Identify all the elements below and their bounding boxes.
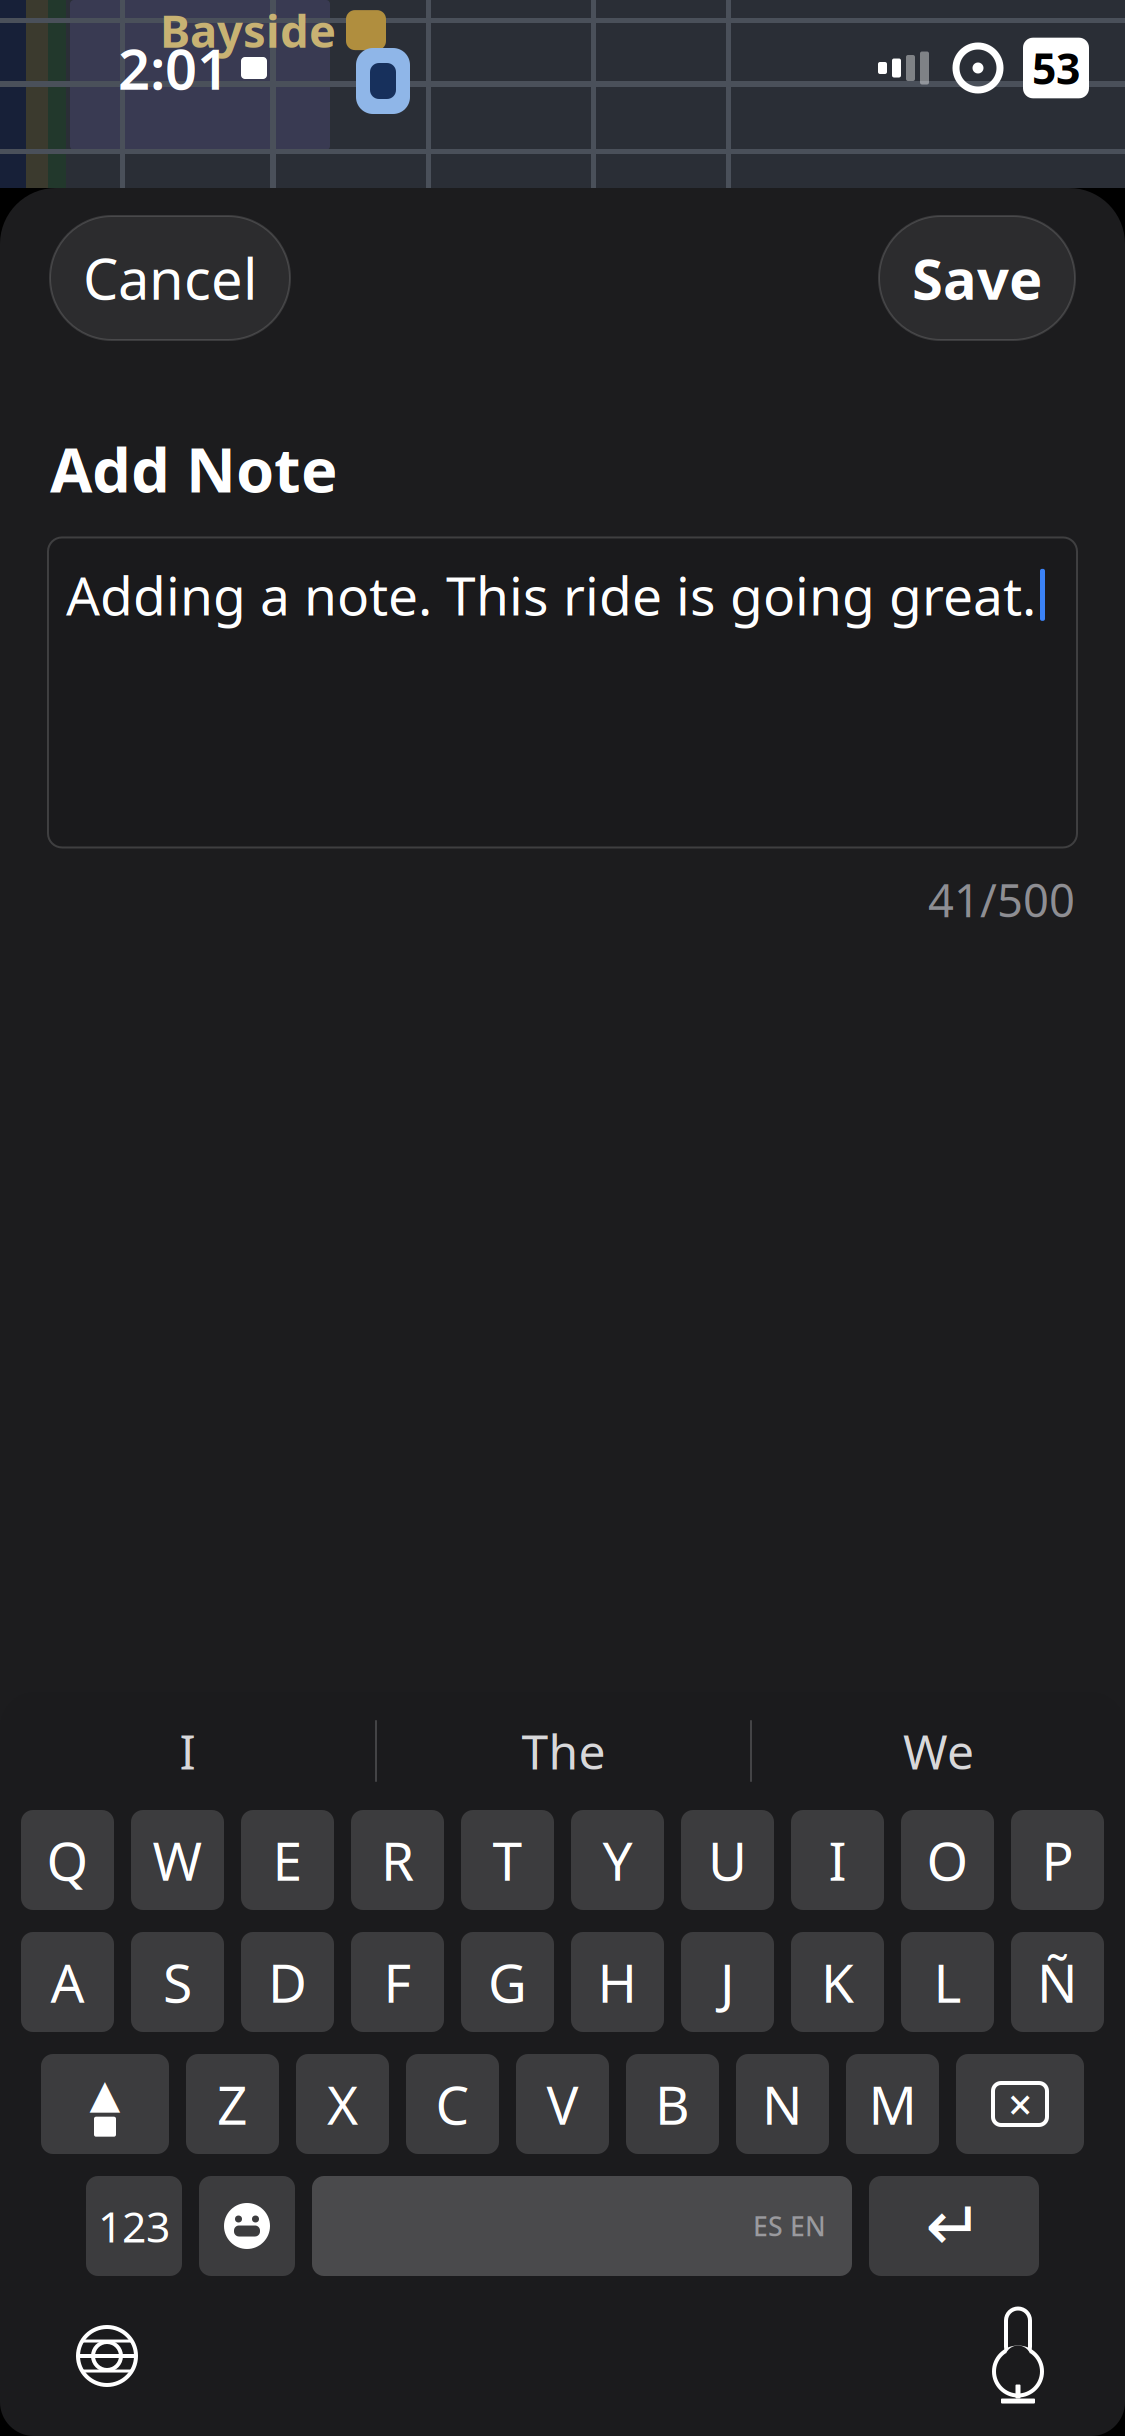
staticText: H bbox=[597, 1947, 637, 2017]
button[interactable]: U bbox=[681, 1810, 774, 1910]
button[interactable]: Ñ bbox=[1011, 1932, 1104, 2032]
staticText: J bbox=[720, 1947, 735, 2017]
staticText: G bbox=[488, 1947, 527, 2017]
button[interactable]: The bbox=[377, 1696, 750, 1806]
staticText: S bbox=[163, 1947, 192, 2017]
staticText: C bbox=[435, 2069, 469, 2139]
button[interactable]: H bbox=[571, 1932, 664, 2032]
button[interactable]: L bbox=[901, 1932, 994, 2032]
staticText: ↵ bbox=[925, 2187, 983, 2265]
button[interactable]: W bbox=[131, 1810, 224, 1910]
staticText: Adding a note. This ride is going great. bbox=[66, 559, 1036, 630]
button[interactable]: P bbox=[1011, 1810, 1104, 1910]
staticText: 2:01 bbox=[118, 31, 229, 105]
staticText: T bbox=[492, 1825, 522, 1895]
staticText: Cancel bbox=[83, 241, 257, 315]
button[interactable]: Emoji bbox=[199, 2176, 295, 2276]
staticText: D bbox=[268, 1947, 307, 2017]
staticText: × bbox=[1008, 2076, 1032, 2132]
staticText: Q bbox=[46, 1825, 88, 1895]
button[interactable]: B bbox=[626, 2054, 719, 2154]
staticText: The bbox=[521, 1719, 605, 1783]
button[interactable]: N bbox=[736, 2054, 829, 2154]
button[interactable]: D bbox=[241, 1932, 334, 2032]
staticText: Bayside bbox=[160, 0, 336, 60]
staticText: 123 bbox=[98, 2198, 170, 2254]
staticText: I bbox=[828, 1825, 846, 1895]
button[interactable]: Save bbox=[879, 216, 1075, 340]
button[interactable]: We bbox=[752, 1696, 1125, 1806]
staticText: M bbox=[868, 2069, 916, 2139]
button[interactable]: Space bbox=[312, 2176, 852, 2276]
staticText: A bbox=[50, 1947, 84, 2017]
button[interactable]: J bbox=[681, 1932, 774, 2032]
button[interactable]: C bbox=[406, 2054, 499, 2154]
button[interactable]: I bbox=[791, 1810, 884, 1910]
button[interactable]: Y bbox=[571, 1810, 664, 1910]
staticText: P bbox=[1041, 1825, 1073, 1895]
staticText: 41/500 bbox=[928, 869, 1075, 930]
button[interactable]: Shift bbox=[41, 2054, 169, 2154]
button[interactable]: S bbox=[131, 1932, 224, 2032]
button[interactable]: K bbox=[791, 1932, 884, 2032]
button[interactable]: Dictate bbox=[973, 2306, 1063, 2406]
button[interactable]: Delete bbox=[956, 2054, 1084, 2154]
button[interactable]: T bbox=[461, 1810, 554, 1910]
staticText: Z bbox=[217, 2069, 248, 2139]
staticText: E bbox=[272, 1825, 302, 1895]
button[interactable]: Q bbox=[21, 1810, 114, 1910]
button[interactable]: I bbox=[0, 1696, 375, 1806]
button[interactable]: O bbox=[901, 1810, 994, 1910]
button[interactable]: Cancel bbox=[50, 216, 290, 340]
staticText: ▲ bbox=[89, 2071, 120, 2117]
staticText: B bbox=[655, 2069, 690, 2139]
button[interactable]: F bbox=[351, 1932, 444, 2032]
button[interactable]: A bbox=[21, 1932, 114, 2032]
button[interactable]: M bbox=[846, 2054, 939, 2154]
button[interactable]: Return bbox=[869, 2176, 1039, 2276]
staticText: X bbox=[327, 2069, 358, 2139]
button[interactable]: X bbox=[296, 2054, 389, 2154]
staticText: W bbox=[152, 1825, 202, 1895]
button[interactable]: R bbox=[351, 1810, 444, 1910]
staticText: O bbox=[926, 1825, 968, 1895]
staticText: Ñ bbox=[1037, 1947, 1078, 2017]
staticText: K bbox=[821, 1947, 854, 2017]
staticText: ES EN bbox=[753, 2208, 826, 2244]
staticText: U bbox=[708, 1825, 747, 1895]
staticText: Y bbox=[602, 1825, 632, 1895]
button[interactable]: G bbox=[461, 1932, 554, 2032]
button[interactable]: 123 bbox=[86, 2176, 182, 2276]
staticText: Save bbox=[912, 241, 1042, 315]
staticText: Add Note bbox=[50, 428, 338, 509]
button[interactable]: E bbox=[241, 1810, 334, 1910]
button[interactable]: V bbox=[516, 2054, 609, 2154]
button[interactable]: Z bbox=[186, 2054, 279, 2154]
staticText: 53 bbox=[1032, 40, 1080, 96]
staticText: R bbox=[381, 1825, 414, 1895]
staticText: F bbox=[383, 1947, 411, 2017]
button[interactable]: Next keyboard bbox=[62, 2311, 152, 2401]
staticText: N bbox=[762, 2069, 803, 2139]
staticText: L bbox=[933, 1947, 961, 2017]
staticText: I bbox=[179, 1719, 195, 1783]
staticText: We bbox=[903, 1719, 974, 1783]
staticText: V bbox=[546, 2069, 578, 2139]
